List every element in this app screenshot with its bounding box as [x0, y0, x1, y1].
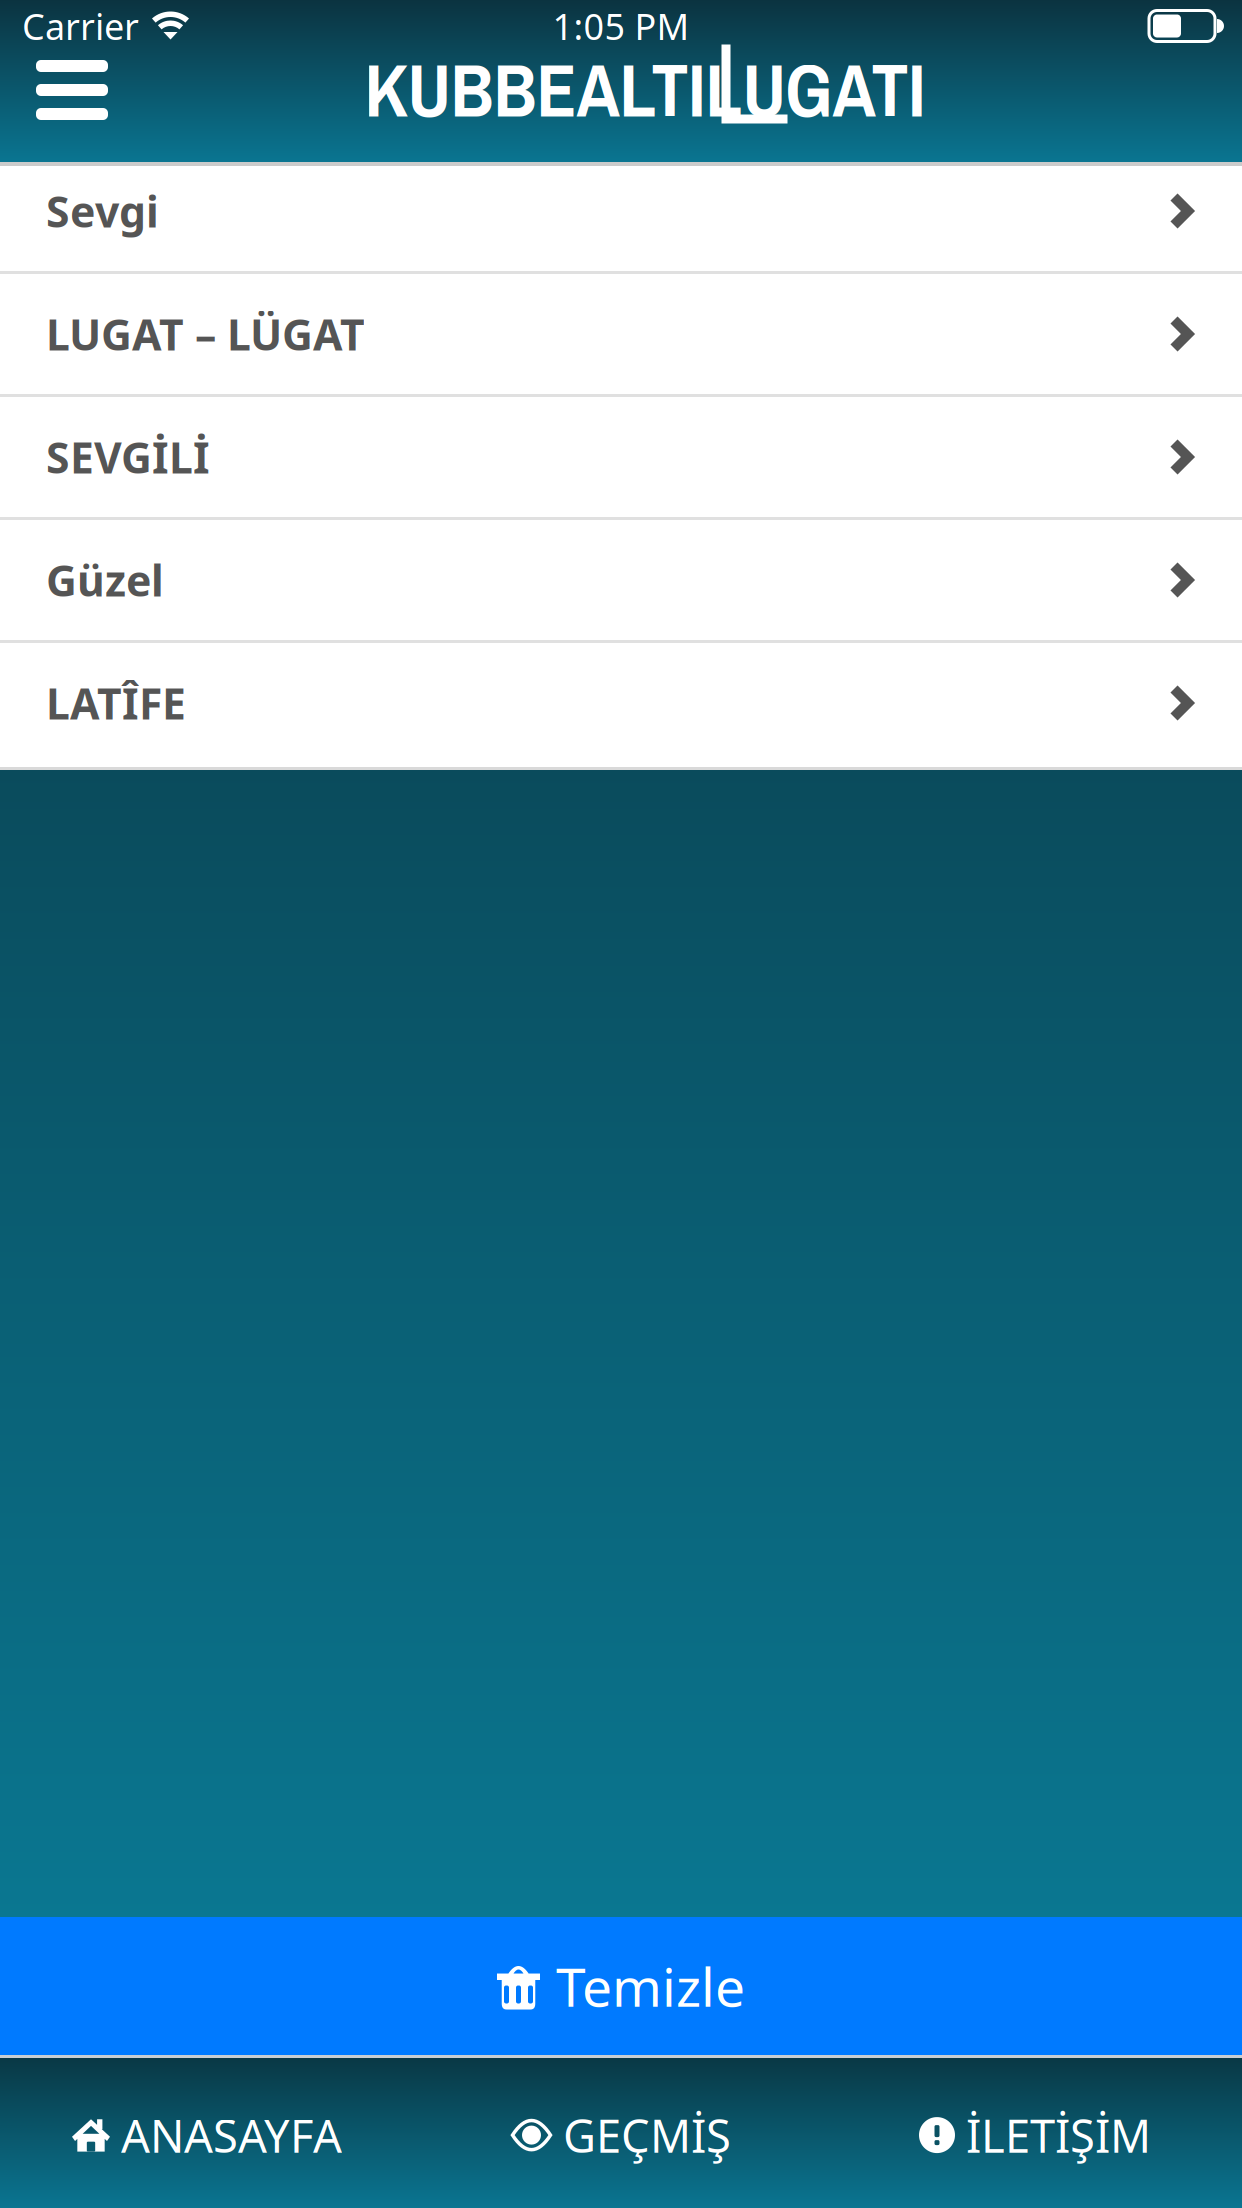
staticText: GEÇMİŞ [563, 2105, 731, 2165]
staticText: KUBBEALTILUGATI [364, 41, 925, 139]
button[interactable]: LUGAT – LÜGAT [0, 274, 1242, 394]
staticText: LATÎFE [46, 675, 186, 731]
button[interactable]: ANASAYFA [0, 2105, 414, 2163]
staticText: Temizle [556, 1951, 745, 2021]
button[interactable]: Temizle [0, 1917, 1242, 2055]
button[interactable]: Menu [0, 53, 144, 149]
button[interactable]: SEVGİLİ [0, 397, 1242, 517]
staticText: İLETİŞİM [966, 2105, 1151, 2165]
button[interactable]: Sevgi [0, 151, 1242, 271]
staticText: 1:05 PM [552, 2, 689, 50]
button[interactable]: LATÎFE [0, 643, 1242, 763]
button[interactable]: İLETİŞİM [828, 2105, 1242, 2163]
staticText: LUGAT – LÜGAT [46, 306, 365, 362]
staticText: ANASAYFA [121, 2105, 342, 2165]
button[interactable]: GEÇMİŞ [414, 2105, 828, 2163]
button[interactable]: Güzel [0, 520, 1242, 640]
staticText: Sevgi [46, 183, 159, 239]
staticText: Carrier [22, 2, 139, 50]
staticText: Güzel [46, 552, 164, 608]
staticText: SEVGİLİ [46, 429, 210, 485]
